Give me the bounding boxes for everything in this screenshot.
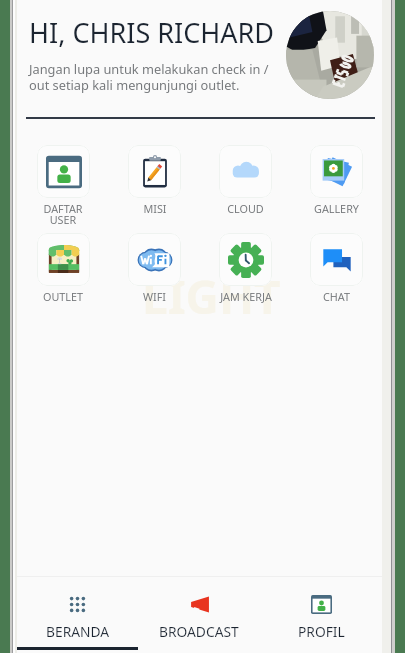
button[interactable]: Profile photo bbox=[286, 11, 374, 99]
staticText: WIFI bbox=[143, 289, 166, 304]
staticText: HI, CHRIS RICHARD bbox=[29, 14, 275, 51]
staticText: MISI bbox=[143, 201, 167, 216]
button[interactable]: WIFI bbox=[109, 233, 200, 304]
button[interactable]: Broadcast bbox=[138, 577, 260, 653]
other: Broadcast bbox=[189, 594, 210, 615]
button[interactable]: Home bbox=[17, 577, 138, 653]
staticText: JAM KERJA bbox=[220, 289, 272, 304]
staticText: PROFIL bbox=[298, 622, 345, 641]
button[interactable]: CHAT bbox=[291, 233, 382, 304]
staticText: GALLERY bbox=[314, 201, 359, 216]
staticText: BROADCAST bbox=[159, 622, 239, 641]
staticText: BERANDA bbox=[46, 622, 110, 641]
button[interactable]: CLOUD bbox=[200, 145, 291, 216]
button[interactable]: OUTLET bbox=[17, 233, 109, 304]
button[interactable]: DAFTAR USER bbox=[17, 145, 109, 227]
staticText: DAFTAR USER bbox=[43, 201, 83, 227]
button[interactable]: JAM KERJA bbox=[200, 233, 291, 304]
staticText: OUTLET bbox=[43, 289, 83, 304]
button[interactable]: PROFIL bbox=[260, 577, 382, 653]
staticText: Jangan lupa untuk melakukan check in / o… bbox=[29, 60, 269, 94]
button[interactable]: MISI bbox=[109, 145, 200, 216]
other: Home bbox=[67, 594, 88, 615]
button[interactable]: GALLERY bbox=[291, 145, 382, 216]
staticText: CHAT bbox=[323, 289, 350, 304]
staticText: CLOUD bbox=[227, 201, 264, 216]
staticText: LIGHT bbox=[142, 265, 281, 328]
